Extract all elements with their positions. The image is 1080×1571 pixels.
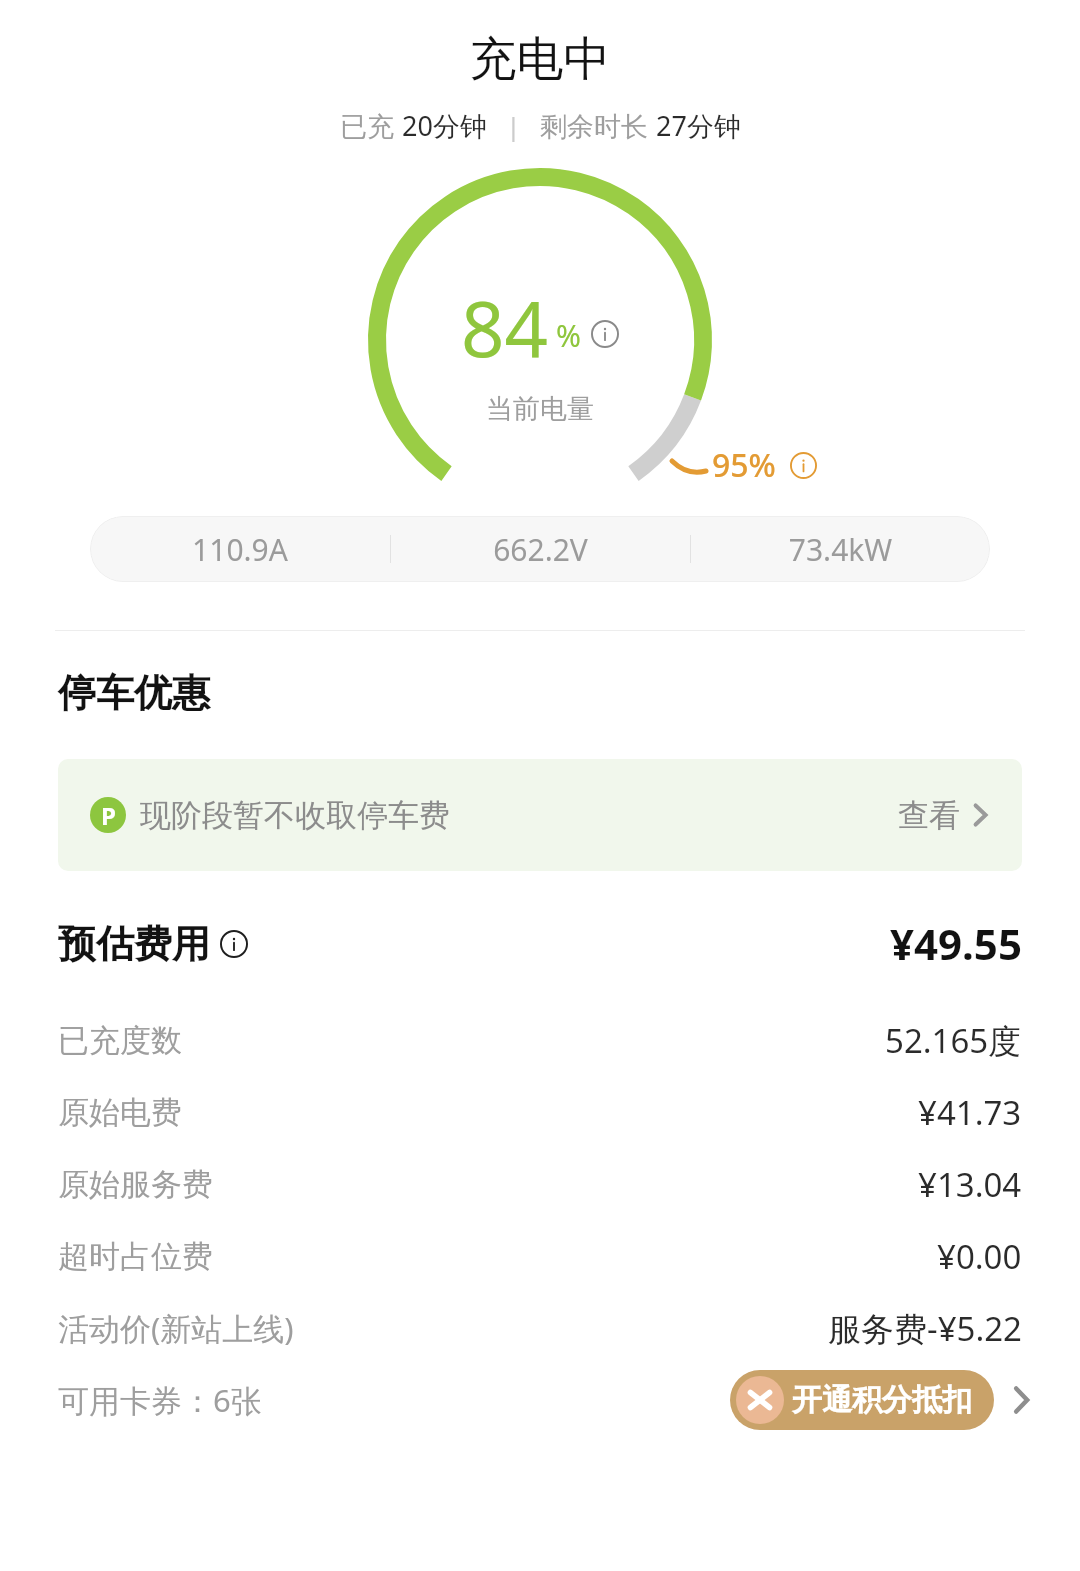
- staticText: %: [556, 315, 581, 356]
- staticText: 开通积分抵扣: [792, 1381, 972, 1419]
- button[interactable]: 费用说明: [220, 930, 248, 958]
- staticText: 超时占位费: [58, 1237, 213, 1276]
- staticText: |: [487, 109, 540, 143]
- staticText: 服务费-¥5.22: [828, 1306, 1022, 1351]
- button[interactable]: 目标电量说明: [790, 452, 817, 479]
- staticText: 52.165度: [885, 1018, 1022, 1063]
- staticText: 95%: [712, 443, 776, 487]
- staticText: 20分钟: [402, 107, 487, 144]
- staticText: 预估费用: [58, 920, 210, 968]
- staticText: 27分钟: [656, 107, 741, 144]
- staticText: 已充: [340, 107, 402, 144]
- staticText: 原始服务费: [58, 1165, 213, 1204]
- staticText: 剩余时长: [540, 107, 656, 144]
- staticText: ¥13.04: [918, 1162, 1022, 1207]
- button[interactable]: 电量说明: [591, 320, 619, 348]
- staticText: 84: [461, 276, 548, 380]
- staticText: 110.9A: [90, 529, 390, 570]
- staticText: P: [101, 799, 116, 832]
- button[interactable]: 开通积分抵扣: [730, 1370, 994, 1430]
- staticText: 当前电量: [486, 392, 594, 426]
- staticText: ¥49.55: [890, 915, 1022, 972]
- staticText: 可用卡券：6张: [58, 1379, 262, 1421]
- staticText: 停车优惠: [58, 669, 210, 717]
- staticText: ¥41.73: [918, 1090, 1022, 1135]
- staticText: 662.2V: [391, 529, 690, 570]
- button[interactable]: P: [58, 759, 1022, 871]
- staticText: 活动价(新站上线): [58, 1307, 294, 1349]
- staticText: 原始电费: [58, 1093, 182, 1132]
- staticText: 查看: [898, 796, 960, 835]
- staticText: 73.4kW: [691, 529, 990, 570]
- staticText: 现阶段暂不收取停车费: [140, 796, 450, 835]
- staticText: 充电中: [0, 30, 1080, 89]
- staticText: ¥0.00: [937, 1234, 1022, 1279]
- staticText: 已充度数: [58, 1021, 182, 1060]
